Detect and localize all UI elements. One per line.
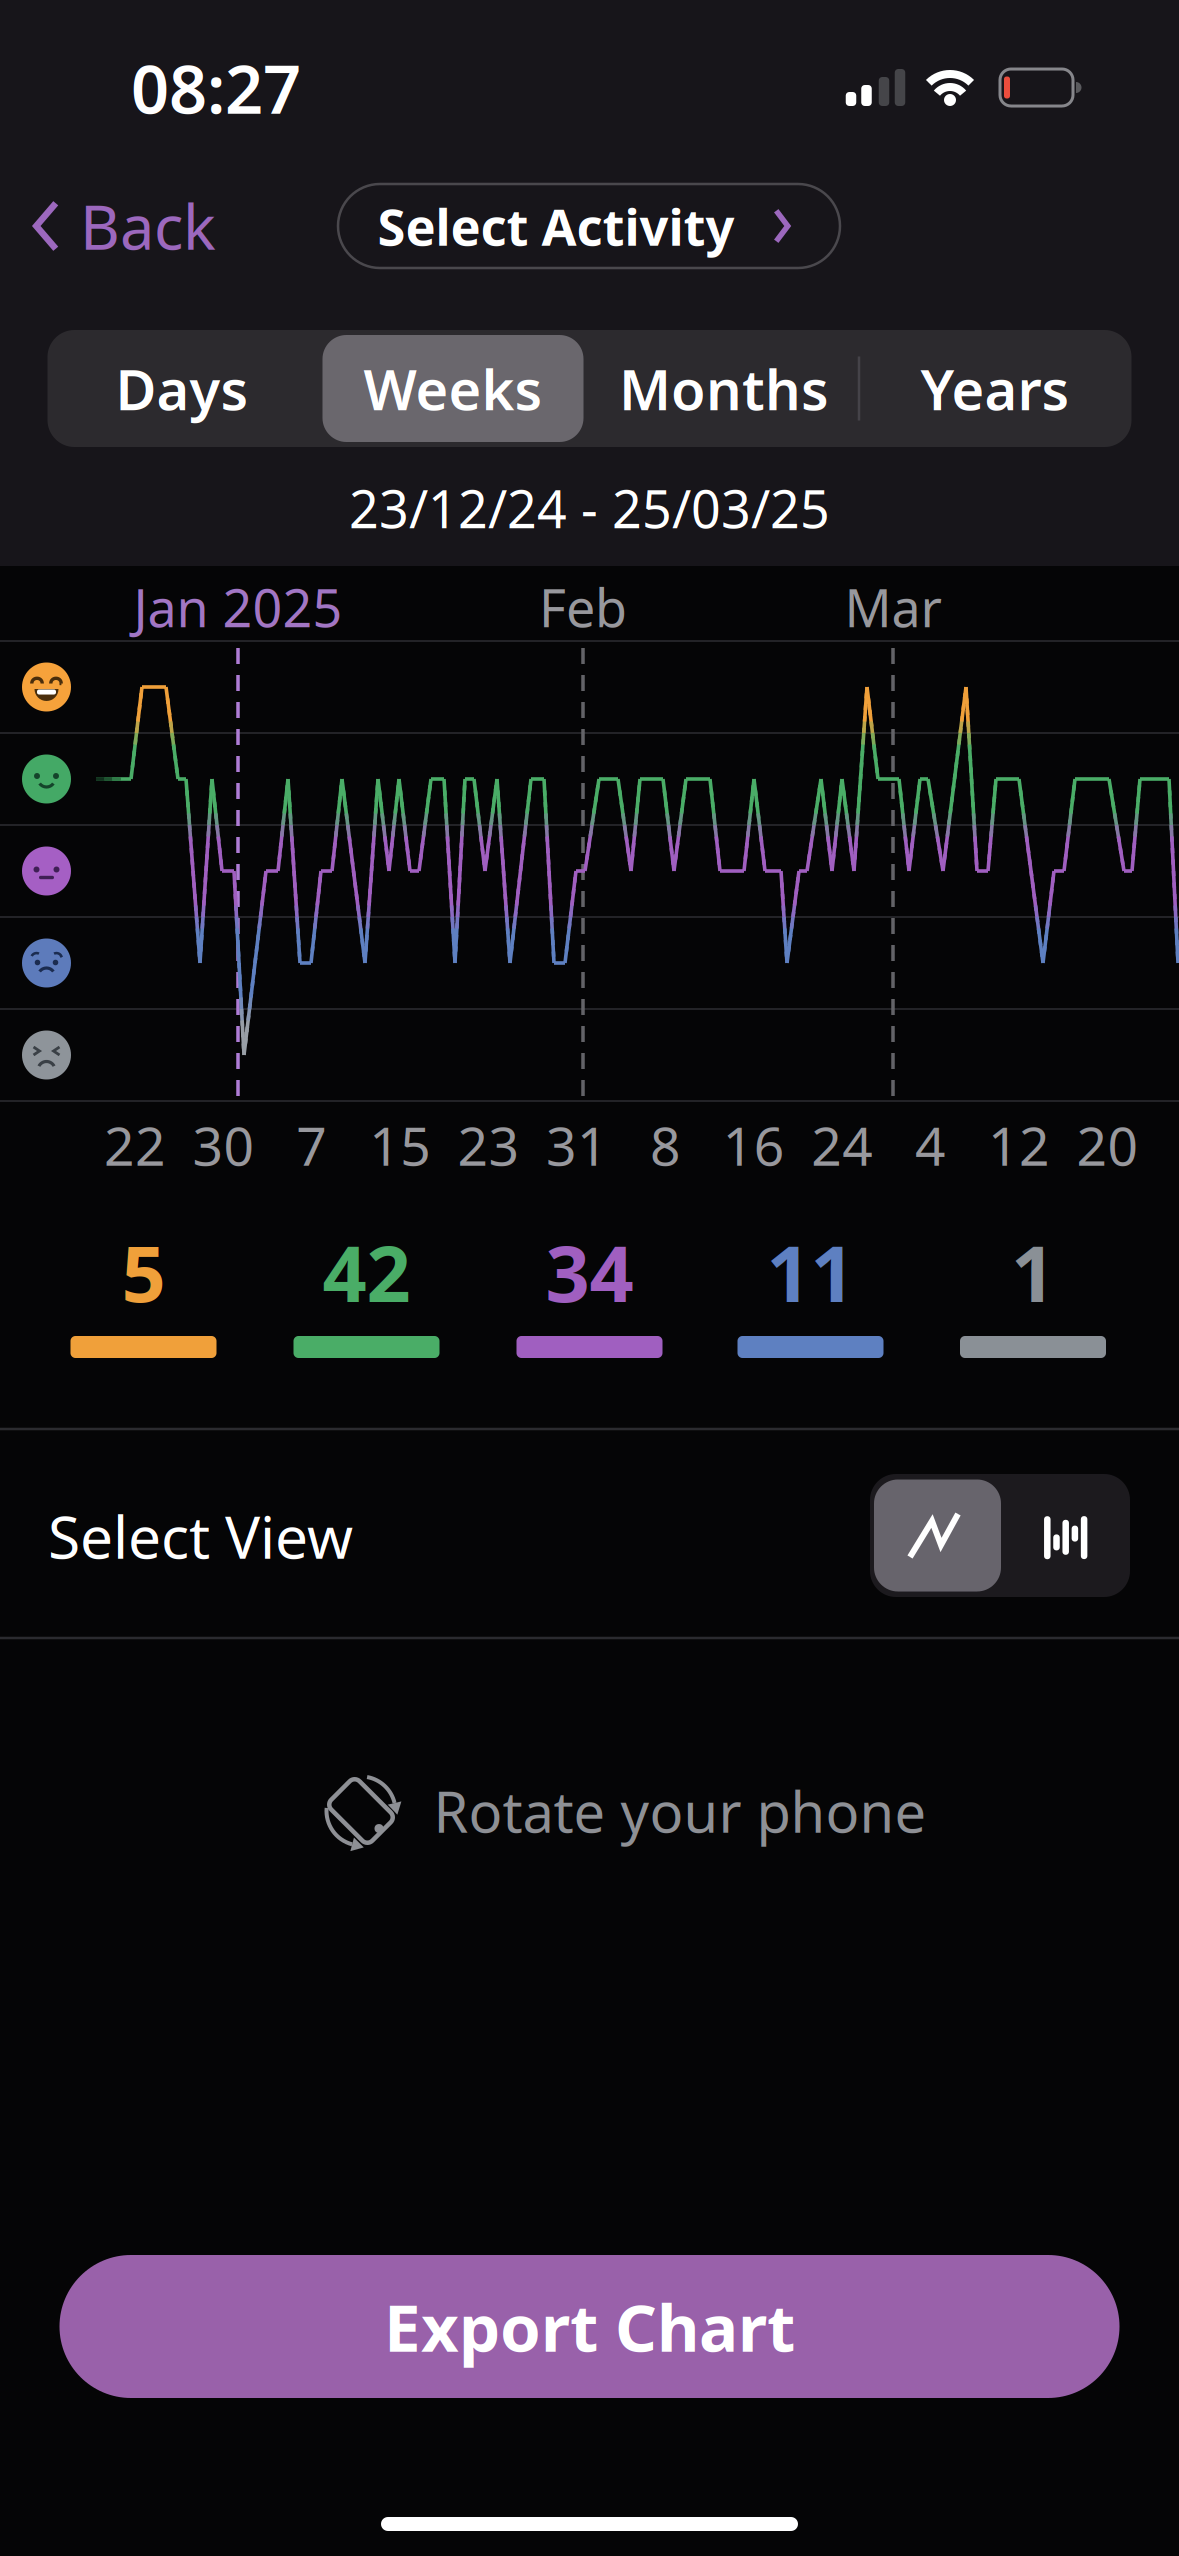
staticText: Export Chart — [384, 2283, 795, 2370]
staticText: Rotate your phone — [433, 1774, 926, 1848]
staticText: 1 — [1011, 1221, 1055, 1323]
button[interactable]: Days — [52, 335, 312, 442]
staticText: 42 — [322, 1221, 410, 1323]
staticText: 08:27 — [131, 44, 301, 132]
staticText: Weeks — [363, 351, 542, 426]
staticText: 23/12/24 - 25/03/25 — [349, 473, 830, 543]
staticText: 11 — [766, 1221, 854, 1323]
staticText: 20 — [1076, 1110, 1138, 1180]
staticText: 8 — [650, 1110, 681, 1180]
staticText: Days — [115, 351, 248, 426]
button[interactable]: Back — [0, 181, 280, 271]
staticText: 23 — [458, 1110, 520, 1180]
staticText: 15 — [369, 1110, 431, 1180]
button[interactable]: Months — [594, 335, 854, 442]
button[interactable] — [870, 1474, 1130, 1597]
staticText: 4 — [915, 1110, 946, 1180]
staticText: 22 — [104, 1110, 166, 1180]
staticText: Back — [80, 185, 216, 267]
staticText: 31 — [546, 1110, 608, 1180]
staticText: Feb — [539, 572, 627, 642]
staticText: Months — [619, 351, 829, 426]
staticText: 30 — [192, 1110, 254, 1180]
staticText: 24 — [811, 1110, 873, 1180]
button[interactable]: Export Chart — [59, 2255, 1119, 2398]
staticText: 34 — [545, 1221, 633, 1323]
button[interactable]: Weeks — [323, 335, 583, 442]
staticText: 16 — [723, 1110, 785, 1180]
button[interactable]: Select Activity — [338, 184, 840, 268]
button[interactable]: Years — [865, 335, 1125, 442]
staticText: Years — [920, 351, 1069, 426]
staticText: 5 — [121, 1221, 165, 1323]
staticText: 12 — [988, 1110, 1050, 1180]
staticText: Jan 2025 — [133, 572, 342, 642]
staticText: 7 — [296, 1110, 327, 1180]
staticText: Mar — [844, 572, 941, 642]
staticText: Select Activity — [377, 192, 734, 260]
staticText: Select View — [48, 1497, 353, 1575]
